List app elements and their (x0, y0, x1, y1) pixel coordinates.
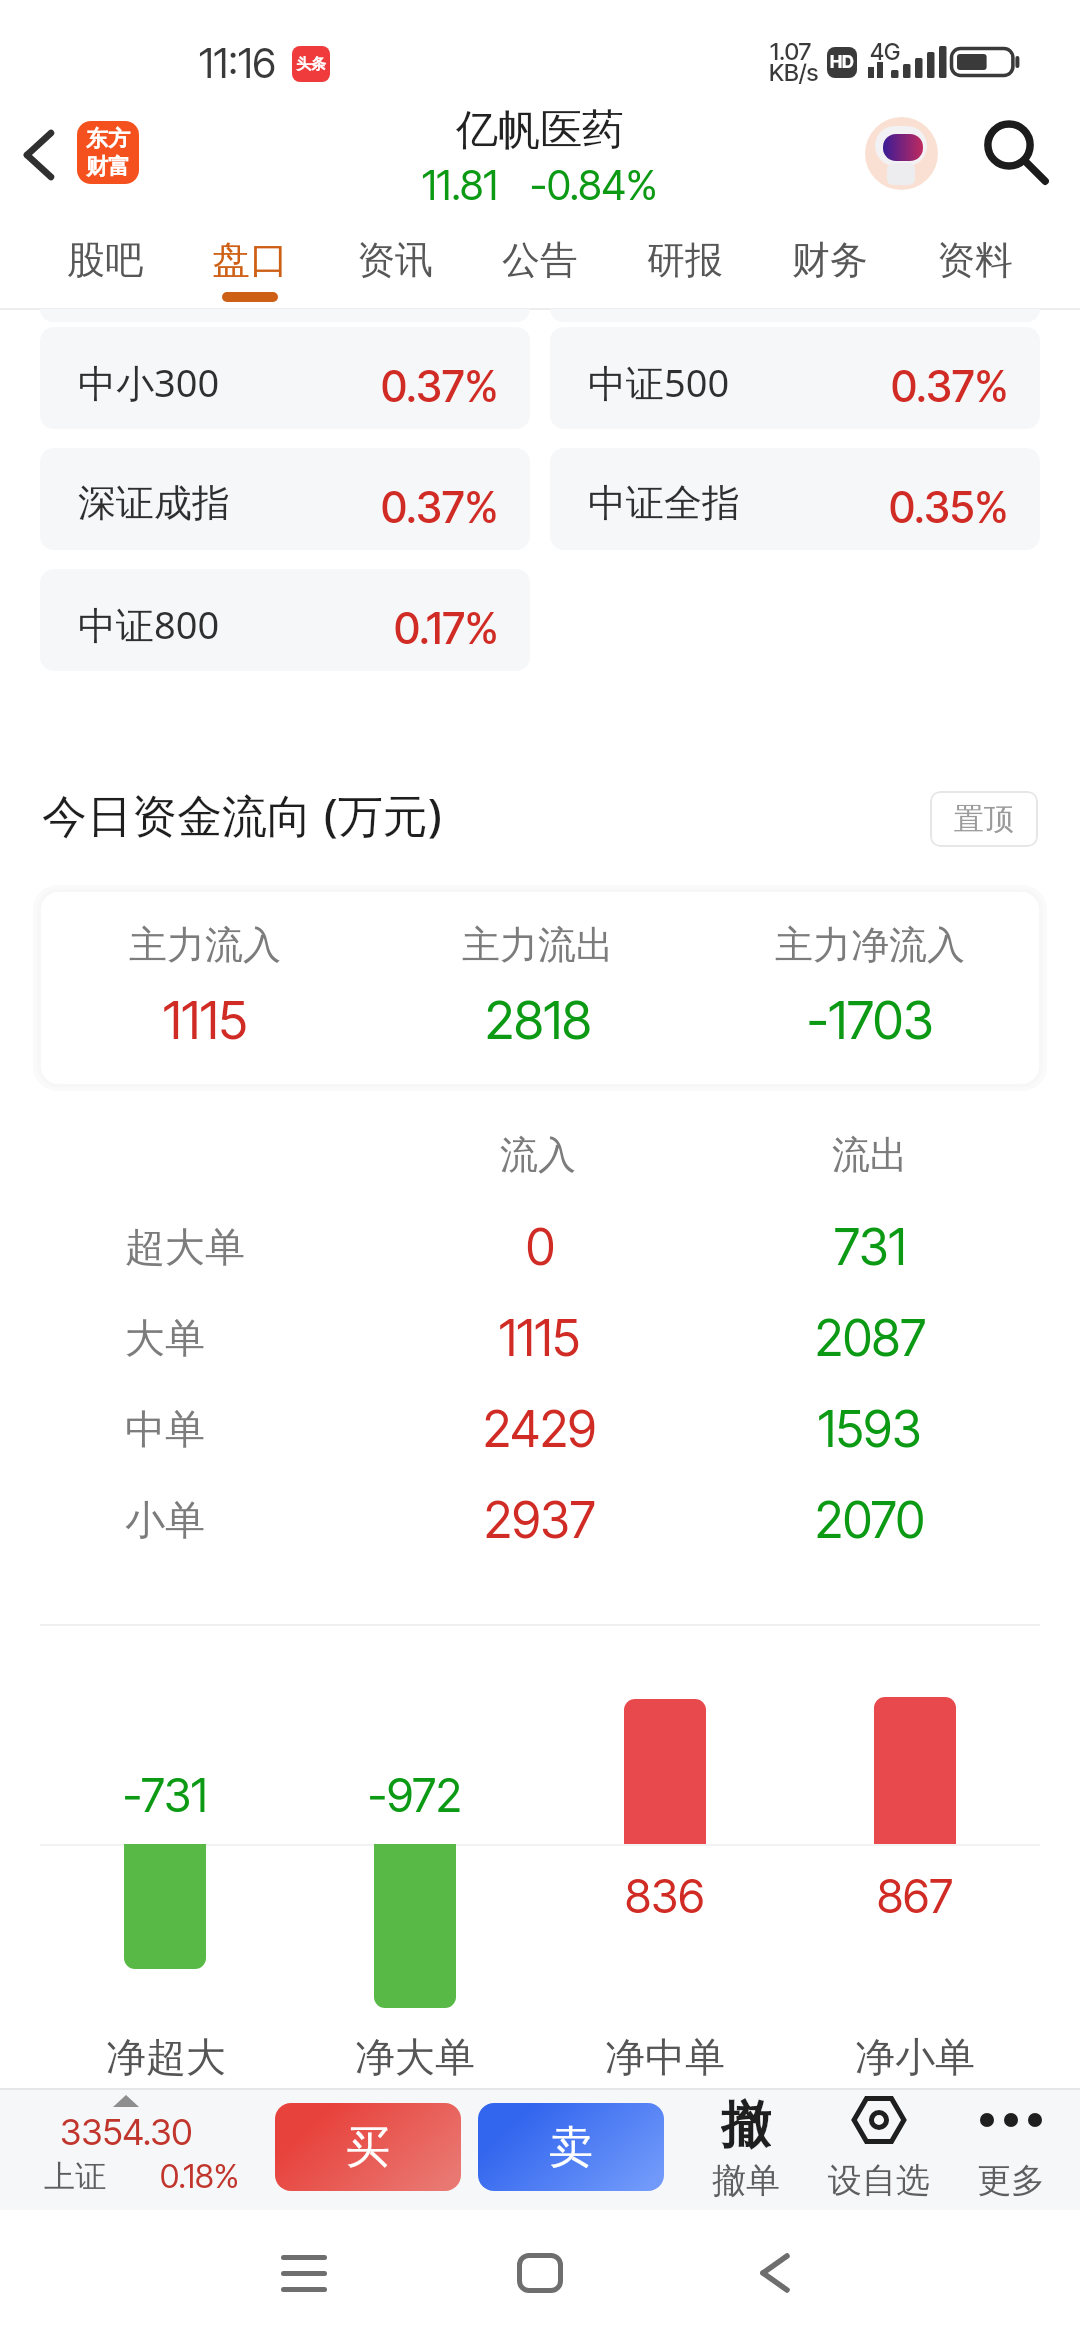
button[interactable]: 中证全指 (550, 448, 1040, 550)
button[interactable]: 资料 (903, 215, 1047, 307)
staticText: 1115 (499, 1308, 581, 1368)
button[interactable]: 买 (275, 2103, 461, 2191)
staticText: 867 (877, 1868, 953, 1924)
staticText: 1115 (163, 989, 248, 1052)
staticText: 盘口 (212, 236, 288, 284)
staticText: 0.37% (381, 481, 499, 533)
staticText: 中证500 (588, 356, 730, 408)
staticText: 上证 (44, 2157, 106, 2196)
staticText: 大单 (125, 1313, 205, 1363)
staticText: 主力净流入 (775, 921, 965, 969)
staticText: 中小300 (78, 356, 220, 408)
staticText: 0.17% (394, 602, 499, 654)
button[interactable]: 东方 (77, 121, 139, 184)
staticText: 净小单 (855, 2032, 975, 2082)
staticText: 2429 (483, 1399, 597, 1459)
staticText: 设自选 (828, 2159, 930, 2202)
staticText: -972 (368, 1767, 462, 1823)
staticText: 股吧 (67, 236, 143, 284)
button[interactable]: 更多 (945, 2088, 1077, 2210)
staticText: 836 (625, 1868, 705, 1924)
staticText: 研报 (647, 236, 723, 284)
button[interactable]: Back (0, 99, 78, 211)
staticText: 2087 (815, 1308, 926, 1368)
button[interactable]: 置顶 (930, 791, 1038, 847)
staticText: KB/s (769, 58, 819, 84)
staticText: 东方 (86, 125, 130, 153)
staticText: 资料 (937, 236, 1013, 284)
button[interactable]: 主力净流入 (670, 892, 1039, 1084)
staticText: 0.35% (889, 481, 1009, 533)
staticText: 11:16 (199, 38, 276, 88)
staticText: 3354.30 (60, 2110, 193, 2154)
staticText: 4G (870, 38, 901, 62)
staticText: 头条 (296, 55, 326, 74)
staticText: 净中单 (605, 2032, 725, 2082)
staticText: 流出 (832, 1131, 908, 1179)
staticText: 置顶 (954, 800, 1014, 838)
staticText: 卖 (549, 2120, 593, 2175)
staticText: 资讯 (357, 236, 433, 284)
button[interactable]: AI assistant (856, 108, 946, 198)
staticText: 0.18% (160, 2156, 239, 2196)
button[interactable]: 资讯 (323, 215, 467, 307)
staticText: 撤 (721, 2094, 771, 2150)
staticText: 撤单 (712, 2159, 780, 2202)
staticText: 中证800 (78, 598, 220, 650)
button[interactable]: 盘口 (178, 215, 322, 307)
staticText: 2937 (484, 1490, 596, 1550)
staticText: 流入 (500, 1131, 576, 1179)
button[interactable]: 公告 (468, 215, 612, 307)
button[interactable]: 中证800 (40, 569, 530, 671)
button[interactable]: Back (685, 2210, 865, 2340)
button[interactable]: Home (450, 2210, 630, 2340)
staticText: 中单 (125, 1404, 205, 1454)
button[interactable]: Search (969, 105, 1065, 201)
staticText: 0.37% (891, 360, 1009, 412)
staticText: HD (830, 52, 854, 73)
staticText: 0.37% (381, 360, 499, 412)
staticText: 0 (526, 1217, 555, 1277)
staticText: 更多 (977, 2159, 1045, 2202)
button[interactable]: 主力流出 (338, 892, 738, 1084)
staticText: 731 (834, 1217, 907, 1277)
button[interactable]: Recent apps (214, 2210, 394, 2340)
staticText: 买 (346, 2120, 390, 2175)
staticText: 财富 (86, 153, 130, 181)
button[interactable]: 设自选 (813, 2088, 945, 2210)
staticText: 净大单 (355, 2032, 475, 2082)
button[interactable]: 研报 (613, 215, 757, 307)
staticText: 1.07 (770, 37, 812, 63)
button[interactable]: 中证500 (550, 327, 1040, 429)
staticText: -1703 (807, 989, 934, 1052)
staticText: 11.81 (422, 160, 498, 210)
staticText: -0.84% (530, 160, 658, 210)
staticText: 主力流出 (462, 921, 614, 969)
button[interactable]: 中小300 (40, 327, 530, 429)
staticText: 主力流入 (129, 921, 281, 969)
staticText: 今日资金流向 (万元) (42, 784, 442, 844)
staticText: 1593 (818, 1399, 922, 1459)
staticText: 公告 (502, 236, 578, 284)
staticText: 超大单 (125, 1222, 245, 1272)
staticText: 2818 (485, 989, 592, 1052)
staticText: 亿帆医药 (456, 104, 624, 157)
button[interactable]: 主力流入 (41, 892, 405, 1084)
staticText: 净超大 (106, 2032, 226, 2082)
button[interactable]: 撤 (680, 2088, 812, 2210)
staticText: -731 (123, 1767, 208, 1823)
button[interactable]: 卖 (478, 2103, 664, 2191)
staticText: 2070 (815, 1490, 925, 1550)
button[interactable]: 财务 (758, 215, 902, 307)
button[interactable]: 深证成指 (40, 448, 530, 550)
staticText: 财务 (792, 236, 868, 284)
button[interactable]: 股吧 (33, 215, 177, 307)
staticText: 深证成指 (78, 479, 230, 527)
staticText: 中证全指 (588, 479, 740, 527)
staticText: 小单 (125, 1495, 205, 1545)
button[interactable]: 3354.30 (0, 2088, 272, 2210)
